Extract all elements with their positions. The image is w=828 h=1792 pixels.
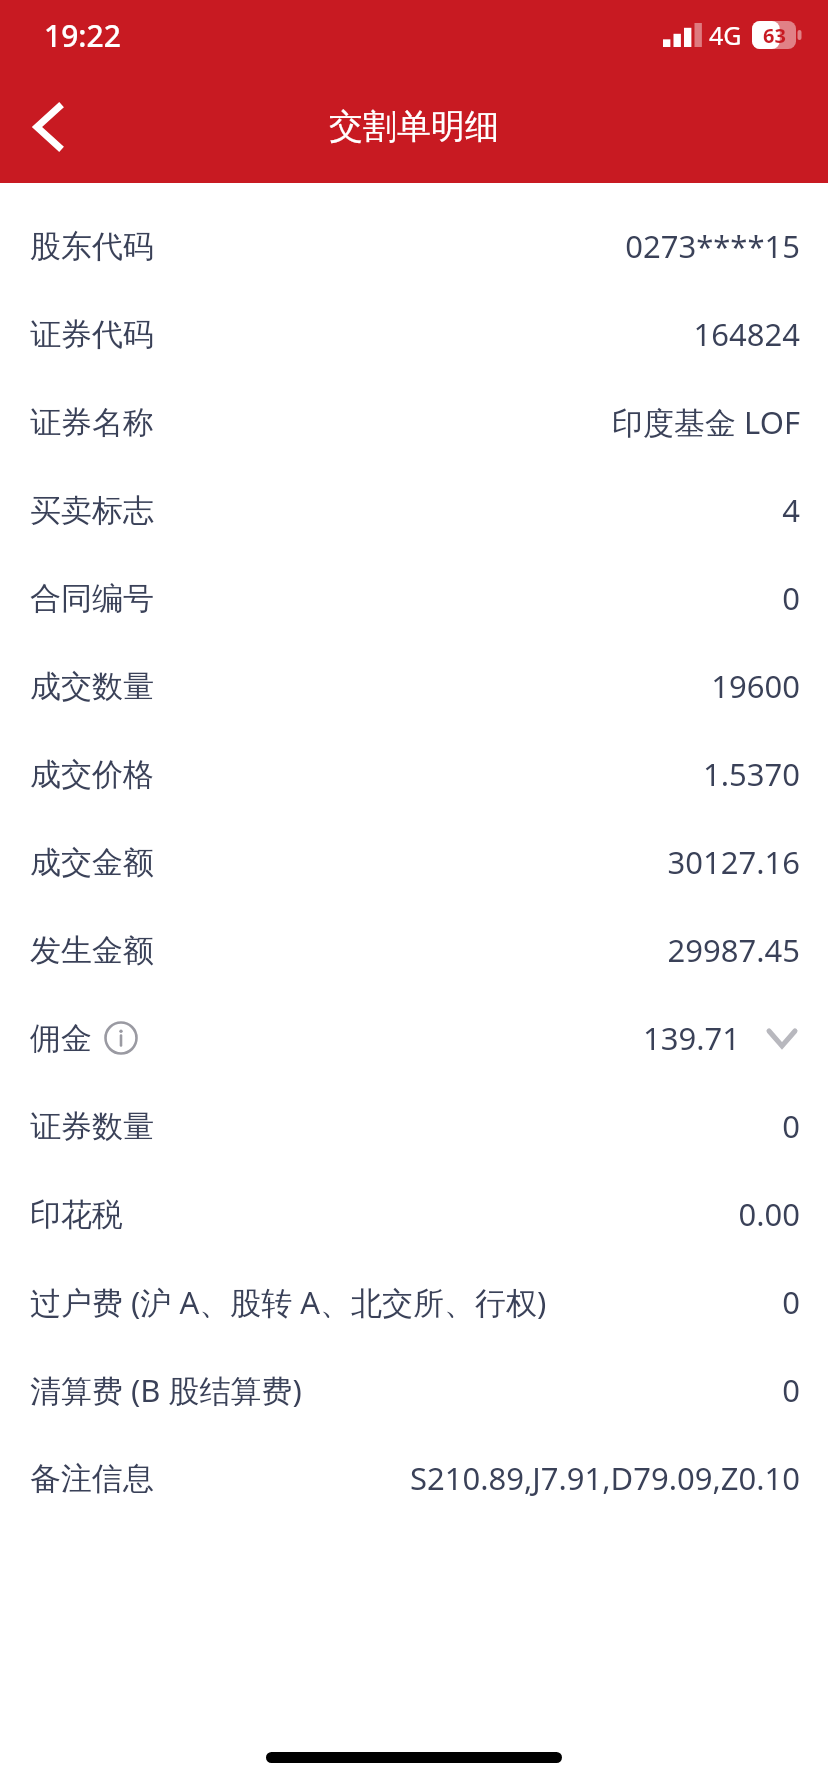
button[interactable]: Back [0,79,96,175]
staticText: 过户费 (沪 A、股转 A、北交所、行权) [30,1281,547,1323]
staticText: 买卖标志 [30,491,154,530]
staticText: 证券代码 [30,315,154,354]
staticText: 0 [782,1281,800,1323]
staticText: 印花税 [30,1195,123,1234]
staticText: 合同编号 [30,579,154,618]
button[interactable]: 佣金说明 [104,1021,138,1055]
staticText: 证券名称 [30,403,154,442]
staticText: 0 [782,1369,800,1411]
staticText: 4G [709,18,742,52]
button[interactable]: 股东代码 [0,202,828,290]
staticText: 成交金额 [30,843,154,882]
button[interactable]: 清算费 (B 股结算费) [0,1346,828,1434]
staticText: 0 [782,577,800,619]
staticText: 清算费 (B 股结算费) [30,1369,302,1411]
staticText: 成交数量 [30,667,154,706]
staticText: 印度基金 LOF [612,401,800,443]
button[interactable]: 佣金 [0,994,828,1082]
staticText: 4 [782,489,800,531]
button[interactable]: 证券数量 [0,1082,828,1170]
button[interactable]: 成交数量 [0,642,828,730]
staticText: 交割单明细 [329,105,499,148]
staticText: 139.71 [643,1017,740,1059]
staticText: 0 [782,1105,800,1147]
button[interactable]: 证券代码 [0,290,828,378]
staticText: 1.5370 [703,753,800,795]
staticText: 佣金 [30,1019,92,1058]
button[interactable]: 备注信息 [0,1434,828,1522]
button[interactable]: 展开佣金明细 [764,1020,800,1056]
staticText: 19600 [711,665,800,707]
staticText: 63 [763,22,786,49]
button[interactable]: 过户费 (沪 A、股转 A、北交所、行权) [0,1258,828,1346]
button[interactable]: 印花税 [0,1170,828,1258]
button[interactable]: 合同编号 [0,554,828,642]
button[interactable]: 成交金额 [0,818,828,906]
staticText: S210.89,J7.91,D79.09,Z0.10 [410,1457,800,1499]
button[interactable]: 成交价格 [0,730,828,818]
staticText: 证券数量 [30,1107,154,1146]
button[interactable]: 买卖标志 [0,466,828,554]
staticText: 成交价格 [30,755,154,794]
staticText: 备注信息 [30,1459,154,1498]
staticText: 19:22 [44,15,121,56]
staticText: 0273****15 [625,225,800,267]
staticText: 29987.45 [667,929,800,971]
staticText: 股东代码 [30,227,154,266]
staticText: 0.00 [738,1193,800,1235]
staticText: 30127.16 [667,841,800,883]
staticText: 164824 [693,313,800,355]
button[interactable]: 证券名称 [0,378,828,466]
button[interactable]: 发生金额 [0,906,828,994]
staticText: 发生金额 [30,931,154,970]
